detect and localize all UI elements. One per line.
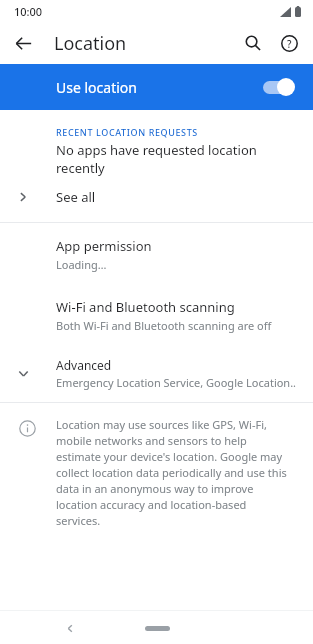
staticText: Location may use sources like GPS, Wi-Fi… bbox=[56, 417, 293, 528]
button[interactable]: See all bbox=[0, 178, 313, 216]
button[interactable]: Back bbox=[56, 614, 84, 642]
staticText: App permission bbox=[56, 237, 152, 255]
staticText: Location bbox=[54, 31, 127, 56]
staticText: No apps have requested location recently bbox=[56, 141, 299, 177]
button[interactable]: Search bbox=[235, 25, 271, 61]
staticText: ? bbox=[287, 37, 292, 51]
button[interactable]: Use location bbox=[0, 64, 313, 110]
staticText: See all bbox=[56, 188, 96, 206]
staticText: RECENT LOCATION REQUESTS bbox=[56, 126, 313, 138]
staticText: Loading… bbox=[56, 257, 107, 272]
staticText: Advanced bbox=[56, 357, 112, 373]
button[interactable]: App permission bbox=[0, 223, 313, 286]
staticText: Both Wi-Fi and Bluetooth scanning are of… bbox=[56, 318, 272, 333]
button[interactable]: Home bbox=[129, 614, 185, 642]
staticText: Use location bbox=[56, 78, 261, 97]
button[interactable]: Help bbox=[271, 25, 307, 61]
button[interactable]: Advanced bbox=[0, 345, 313, 402]
button[interactable]: Wi-Fi and Bluetooth scanning bbox=[0, 286, 313, 345]
button[interactable]: Back bbox=[8, 28, 38, 58]
staticText: Emergency Location Service, Google Locat… bbox=[56, 375, 297, 390]
staticText: Wi-Fi and Bluetooth scanning bbox=[56, 298, 235, 316]
staticText: 10:00 bbox=[14, 4, 43, 19]
